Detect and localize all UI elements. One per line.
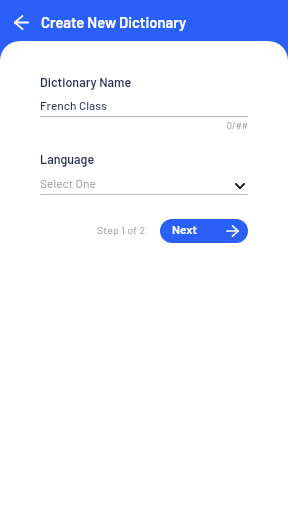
staticText: Language xyxy=(40,151,95,166)
staticText: Step 1 of 2 xyxy=(97,223,146,236)
button[interactable]: Next xyxy=(160,219,248,243)
staticText: Next xyxy=(172,222,197,236)
staticText: Dictionary Name xyxy=(40,74,132,89)
staticText: Select One xyxy=(40,176,232,190)
staticText: 0/## xyxy=(40,120,248,131)
staticText: Create New Dictionary xyxy=(41,13,187,31)
staticText: French Class xyxy=(40,98,107,112)
button[interactable]: Select language xyxy=(232,178,248,194)
button[interactable]: Back xyxy=(8,9,34,35)
